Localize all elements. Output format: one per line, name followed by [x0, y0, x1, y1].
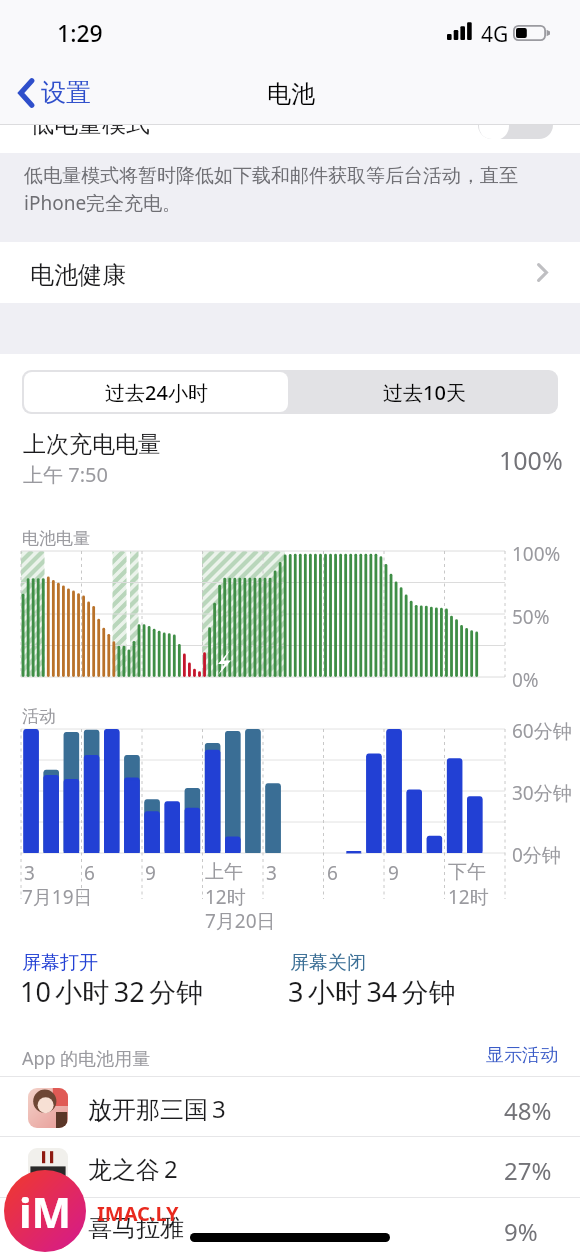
staticText: 48%	[504, 1094, 552, 1127]
staticText: 3 小时 34 分钟	[288, 973, 456, 1010]
staticText: 100%	[499, 443, 563, 477]
staticText: 显示活动	[486, 1044, 558, 1067]
button[interactable]: 喜马拉雅	[0, 1198, 580, 1255]
staticText: 上午	[205, 860, 243, 884]
staticText: 100%	[512, 541, 561, 567]
staticText: 6	[84, 860, 95, 886]
staticText: 下午	[448, 860, 486, 884]
button[interactable]: Low Power Mode	[478, 125, 553, 139]
staticText: 电池	[267, 79, 315, 109]
button[interactable]: 过去10天	[290, 370, 558, 414]
staticText: 喜马拉雅	[88, 1213, 184, 1243]
button[interactable]: 设置	[10, 72, 99, 113]
staticText: 上午 7:50	[23, 461, 108, 488]
staticText: 9%	[504, 1215, 538, 1248]
staticText: 6	[327, 860, 338, 886]
staticText: 电池健康	[30, 260, 126, 290]
button[interactable]: 显示活动	[482, 1040, 562, 1071]
staticText: 低电量模式将暂时降低如下载和邮件获取等后台活动，直至	[24, 164, 518, 188]
staticText: 27%	[504, 1154, 552, 1187]
staticText: 30分钟	[512, 780, 572, 806]
staticText: 0%	[512, 667, 539, 693]
staticText: 12时	[205, 884, 246, 910]
staticText: IMAC.LY	[97, 1200, 179, 1227]
button[interactable]	[0, 125, 580, 153]
button[interactable]: 龙之谷 2	[0, 1137, 580, 1197]
staticText: 60分钟	[512, 718, 572, 744]
staticText: 10 小时 32 分钟	[20, 973, 204, 1010]
staticText: 0分钟	[512, 842, 561, 868]
staticText: 龙之谷 2	[88, 1152, 178, 1185]
staticText: 7月19日	[22, 884, 93, 910]
staticText: 屏幕打开	[22, 951, 98, 975]
staticText: 9	[388, 860, 399, 886]
staticText: 3	[24, 860, 35, 886]
staticText: 放开那三国 3	[88, 1092, 226, 1125]
staticText: 上次充电电量	[23, 430, 161, 459]
staticText: 过去24小时	[105, 379, 208, 406]
button[interactable]: 过去24小时	[24, 372, 288, 412]
staticText: 3	[266, 860, 277, 886]
staticText: 4G	[481, 20, 509, 49]
button[interactable]: 放开那三国 3	[0, 1077, 580, 1137]
staticText: iPhone完全充电。	[24, 190, 182, 216]
staticText: App 的电池用量	[22, 1046, 151, 1071]
staticText: 12时	[448, 884, 489, 910]
staticText: iM	[19, 1183, 72, 1240]
staticText: 活动	[22, 706, 56, 727]
staticText: 屏幕关闭	[290, 951, 366, 975]
staticText: 1:29	[57, 17, 103, 48]
staticText: 低电量模式	[30, 125, 150, 137]
staticText: 设置	[41, 77, 91, 108]
staticText: 过去10天	[383, 379, 466, 406]
staticText: 电池电量	[22, 528, 90, 549]
staticText: 7月20日	[205, 908, 276, 934]
staticText: 50%	[512, 604, 550, 630]
staticText: 9	[145, 860, 156, 886]
button[interactable]	[0, 242, 580, 303]
